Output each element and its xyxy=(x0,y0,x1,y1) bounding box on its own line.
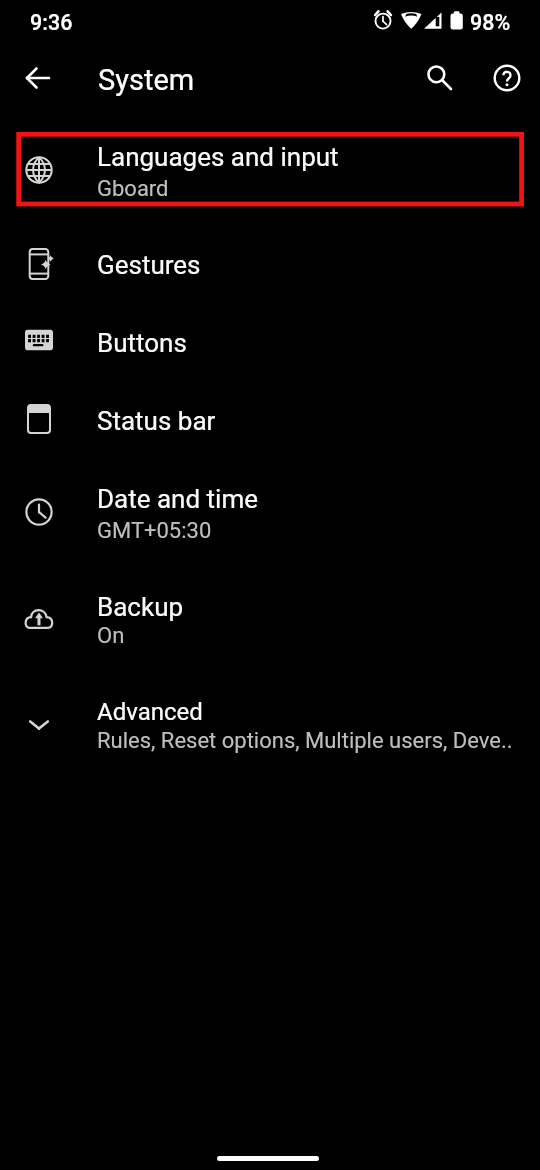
button[interactable] xyxy=(0,131,540,206)
button[interactable] xyxy=(0,303,540,381)
staticText: 9:36 xyxy=(30,10,73,35)
staticText: Gboard xyxy=(97,176,169,202)
staticText: Backup xyxy=(97,592,184,622)
staticText: Date and time xyxy=(97,484,258,514)
button[interactable]: Back xyxy=(14,54,62,102)
staticText: GMT+05:30 xyxy=(97,518,212,544)
button[interactable] xyxy=(0,565,540,672)
staticText: 98% xyxy=(470,10,511,35)
button[interactable]: Help xyxy=(483,54,531,102)
button[interactable] xyxy=(0,206,540,303)
staticText: Advanced xyxy=(97,698,203,726)
staticText: Rules, Reset options, Multiple users, De… xyxy=(97,728,513,754)
button[interactable] xyxy=(0,381,540,458)
button[interactable] xyxy=(0,458,540,565)
staticText: Status bar xyxy=(97,406,216,436)
staticText: On xyxy=(97,623,125,649)
staticText: Languages and input xyxy=(97,142,339,172)
button[interactable]: Search xyxy=(416,54,464,102)
staticText: Gestures xyxy=(97,250,201,280)
staticText: System xyxy=(98,63,195,97)
staticText: Buttons xyxy=(97,328,187,358)
button[interactable] xyxy=(0,672,540,777)
